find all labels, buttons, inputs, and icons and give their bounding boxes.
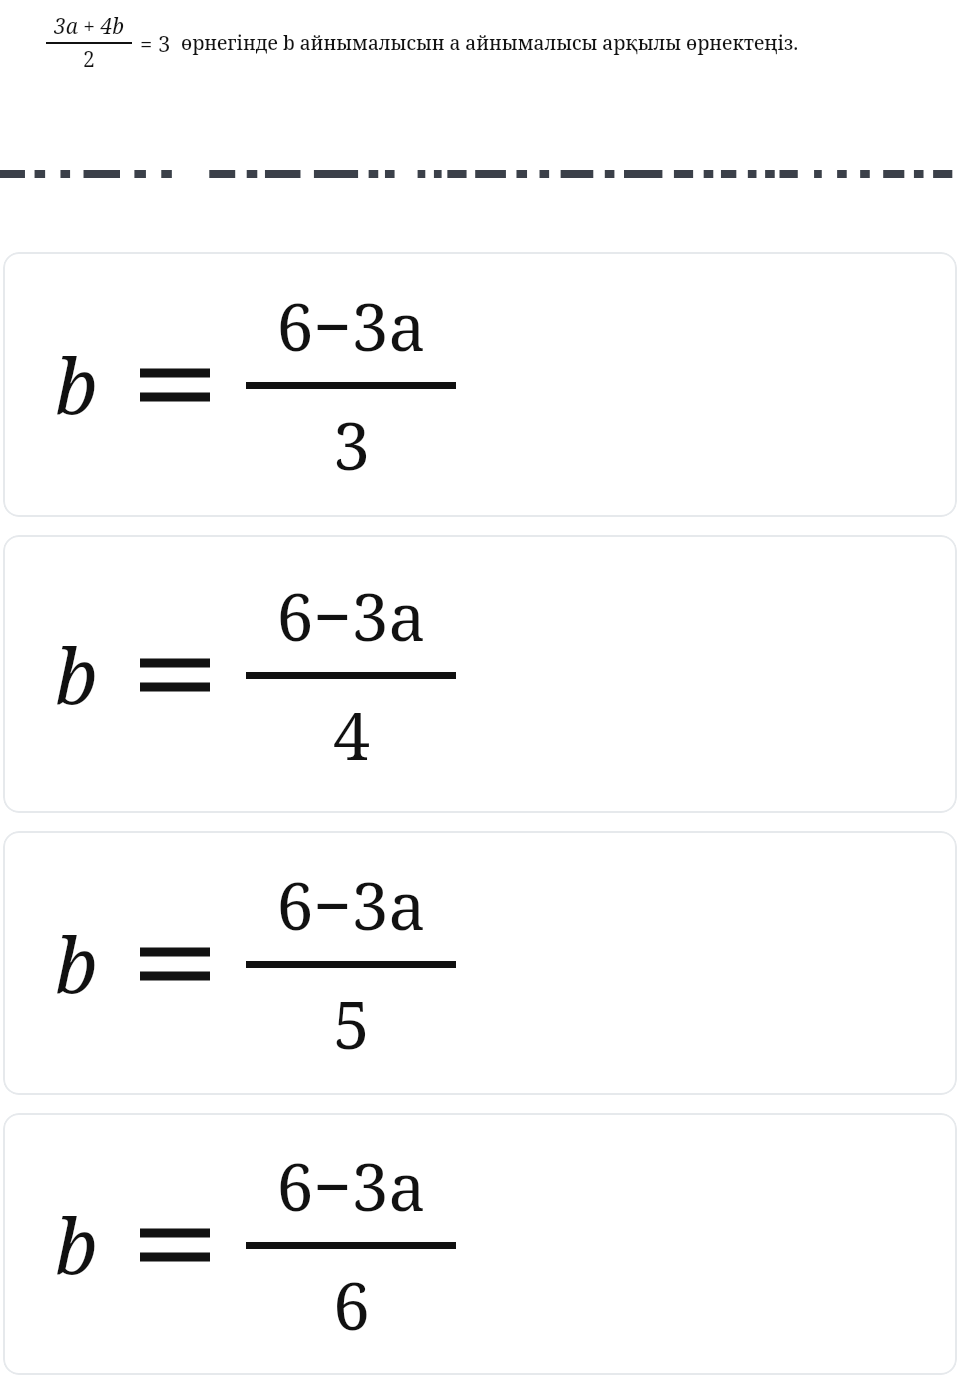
- staticText: 6−3a: [276, 570, 426, 660]
- staticText: b: [55, 912, 98, 1016]
- staticText: b: [55, 623, 98, 727]
- staticText: 2: [83, 45, 95, 74]
- button[interactable]: Answer option b equals 6 minus 3a over 3: [3, 252, 957, 517]
- staticText: b: [55, 333, 98, 437]
- staticText: 6−3a: [276, 280, 426, 370]
- button[interactable]: Answer option b equals 6 minus 3a over 5: [3, 831, 957, 1095]
- staticText: 6: [333, 1259, 370, 1349]
- staticText: 4: [333, 689, 370, 779]
- staticText: = 3: [140, 28, 171, 58]
- staticText: 3: [333, 399, 370, 489]
- staticText: b: [55, 1193, 98, 1297]
- button[interactable]: Answer option b equals 6 minus 3a over 4: [3, 535, 957, 813]
- staticText: 5: [333, 978, 370, 1068]
- staticText: 6−3a: [276, 859, 426, 949]
- staticText: 6−3a: [276, 1140, 426, 1230]
- staticText: 3a + 4b: [54, 12, 125, 41]
- staticText: өрнегінде b айнымалысын a айнымалысы арқ…: [181, 30, 799, 56]
- button[interactable]: Answer option b equals 6 minus 3a over 6: [3, 1113, 957, 1375]
